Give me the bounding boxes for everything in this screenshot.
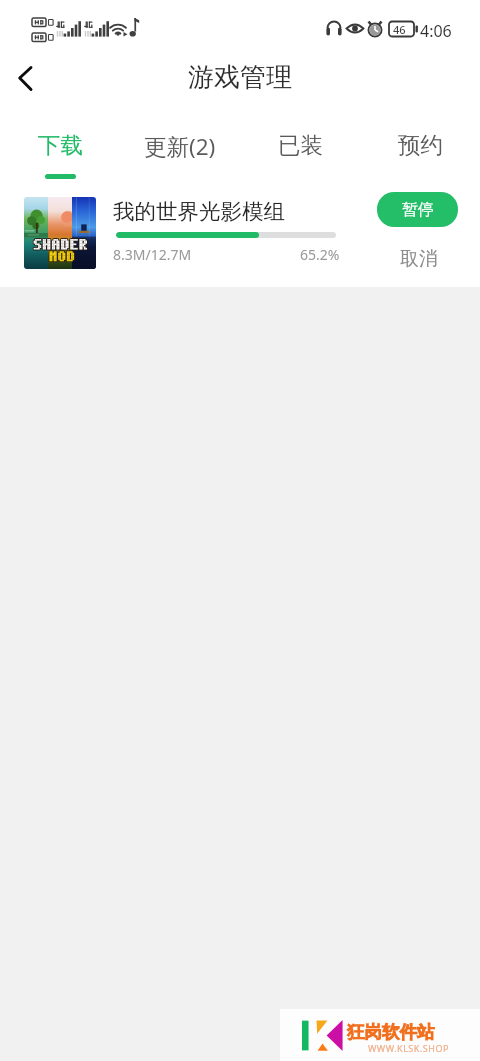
- staticText: 更新(2): [144, 131, 216, 162]
- staticText: 取消: [400, 247, 438, 271]
- button[interactable]: 预约: [360, 110, 480, 182]
- button[interactable]: 更新(2): [120, 110, 240, 182]
- staticText: 8.3M/12.7M: [113, 245, 192, 264]
- staticText: 暂停: [402, 200, 434, 220]
- staticText: 65.2%: [300, 245, 340, 264]
- button[interactable]: 取消: [390, 244, 448, 274]
- staticText: 4:06: [420, 20, 452, 42]
- staticText: 我的世界光影模组: [113, 198, 285, 225]
- staticText: 游戏管理: [188, 61, 292, 94]
- button[interactable]: 已装: [240, 110, 360, 182]
- staticText: WWW.KLSK.SHOP: [368, 1042, 449, 1054]
- staticText: 狂岗软件站: [347, 1021, 435, 1043]
- button[interactable]: Back: [0, 52, 52, 104]
- button[interactable]: 暂停: [377, 192, 458, 227]
- button[interactable]: 下载: [0, 110, 120, 182]
- button[interactable]: 我的世界光影模组: [0, 182, 480, 287]
- staticText: 预约: [398, 131, 443, 159]
- staticText: 已装: [278, 131, 323, 159]
- staticText: 46: [393, 22, 406, 37]
- staticText: 下载: [38, 131, 83, 159]
